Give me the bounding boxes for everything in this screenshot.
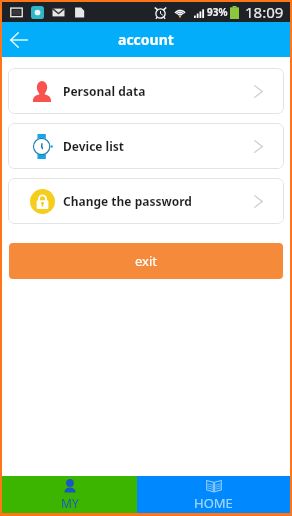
button[interactable]: exit (9, 243, 283, 279)
staticText: MY (61, 495, 79, 511)
staticText: Personal data (63, 83, 146, 99)
staticText: exit (135, 252, 157, 270)
staticText: HOME (194, 494, 233, 512)
button[interactable]: Personal data (8, 68, 284, 114)
button[interactable]: HOME (137, 476, 290, 513)
staticText: Device list (63, 138, 125, 154)
staticText: Change the password (63, 193, 192, 209)
staticText: 18:09 (245, 2, 284, 22)
button[interactable]: MY (2, 476, 137, 513)
button[interactable]: Back (2, 23, 36, 57)
button[interactable]: Device list (8, 123, 284, 169)
staticText: account (118, 30, 174, 49)
button[interactable]: Change the password (8, 178, 284, 224)
staticText: 93% (207, 5, 228, 19)
